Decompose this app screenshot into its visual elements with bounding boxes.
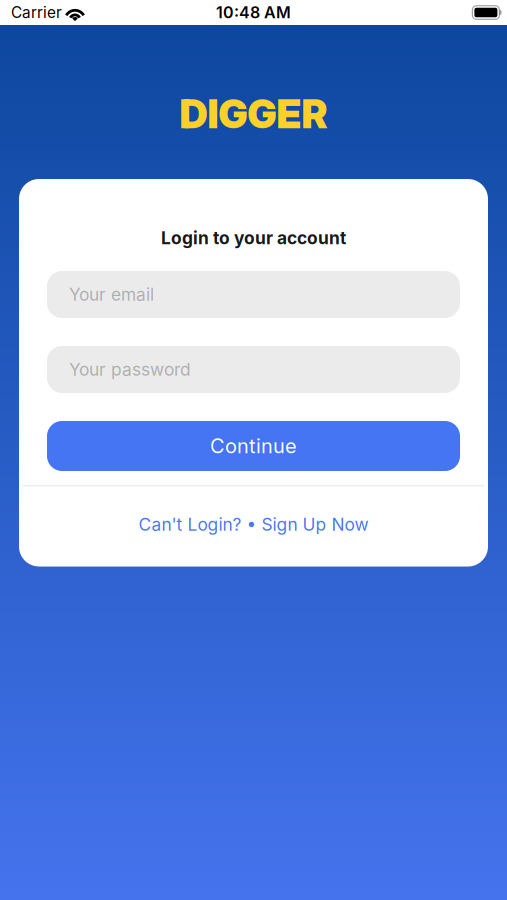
- button[interactable]: Can't Login? • Sign Up Now: [19, 486, 488, 549]
- button[interactable]: Continue: [47, 421, 460, 471]
- staticText: Can't Login? • Sign Up Now: [138, 514, 368, 535]
- staticText: 10:48 AM: [216, 3, 291, 22]
- staticText: Continue: [210, 434, 297, 458]
- staticText: Your email: [69, 284, 154, 305]
- staticText: Your password: [69, 359, 191, 380]
- staticText: DIGGER: [179, 90, 327, 138]
- button[interactable]: Your email: [47, 271, 460, 318]
- staticText: Login to your account: [161, 227, 346, 248]
- button[interactable]: Your password: [47, 346, 460, 393]
- staticText: Carrier: [11, 3, 62, 22]
